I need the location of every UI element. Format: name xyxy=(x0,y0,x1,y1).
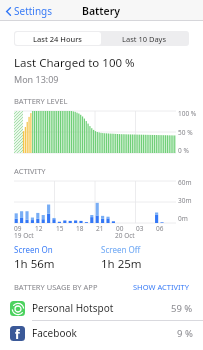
staticText: 09 xyxy=(14,224,35,233)
staticText: Mon 13:09 xyxy=(14,73,59,85)
staticText: 06 xyxy=(156,224,176,233)
staticText: 03 xyxy=(136,224,156,233)
button[interactable]: Last 10 Days xyxy=(101,32,188,45)
staticText: 59 % xyxy=(171,302,193,315)
staticText: 19 Oct xyxy=(14,231,115,240)
staticText: Screen Off xyxy=(101,244,141,255)
staticText: Battery xyxy=(82,4,121,18)
staticText: 100 % xyxy=(178,109,197,118)
other: Facebook xyxy=(10,326,25,341)
staticText: 15 xyxy=(56,224,76,233)
staticText: SHOW ACTIVITY xyxy=(133,282,189,292)
staticText: Last 24 Hours xyxy=(33,34,83,44)
staticText: 0 % xyxy=(178,146,189,155)
staticText: 18 xyxy=(76,224,96,233)
staticText: Last 10 Days xyxy=(122,34,167,44)
staticText: BATTERY LEVEL xyxy=(14,96,68,106)
staticText: 12 xyxy=(35,224,56,233)
staticText: 1h 56m xyxy=(14,256,55,272)
staticText: ACTIVITY xyxy=(14,166,46,176)
button[interactable]: Facebook xyxy=(0,321,203,345)
staticText: Screen On xyxy=(14,244,53,255)
staticText: 60m xyxy=(178,178,192,187)
staticText: f xyxy=(15,326,20,341)
staticText: BATTERY USAGE BY APP xyxy=(14,282,98,292)
staticText: 0m xyxy=(178,214,188,223)
staticText: Personal Hotspot xyxy=(32,301,114,315)
staticText: Last Charged to 100 % xyxy=(14,55,135,71)
staticText: 9 % xyxy=(177,327,193,340)
staticText: Facebook xyxy=(32,326,77,340)
button[interactable]: SHOW ACTIVITY xyxy=(133,282,189,292)
button[interactable]: Last 24 Hours xyxy=(15,32,101,45)
staticText: 20 Oct xyxy=(115,231,176,240)
staticText: 00 xyxy=(116,224,136,233)
staticText: 50 % xyxy=(178,128,193,137)
other: Personal Hotspot xyxy=(13,304,23,314)
staticText: 21 xyxy=(96,224,116,233)
button[interactable]: Personal Hotspot xyxy=(0,296,203,320)
button[interactable]: Settings xyxy=(0,2,59,20)
staticText: Settings xyxy=(14,4,53,18)
staticText: 1h 25m xyxy=(101,256,142,272)
staticText: 30m xyxy=(178,196,192,205)
